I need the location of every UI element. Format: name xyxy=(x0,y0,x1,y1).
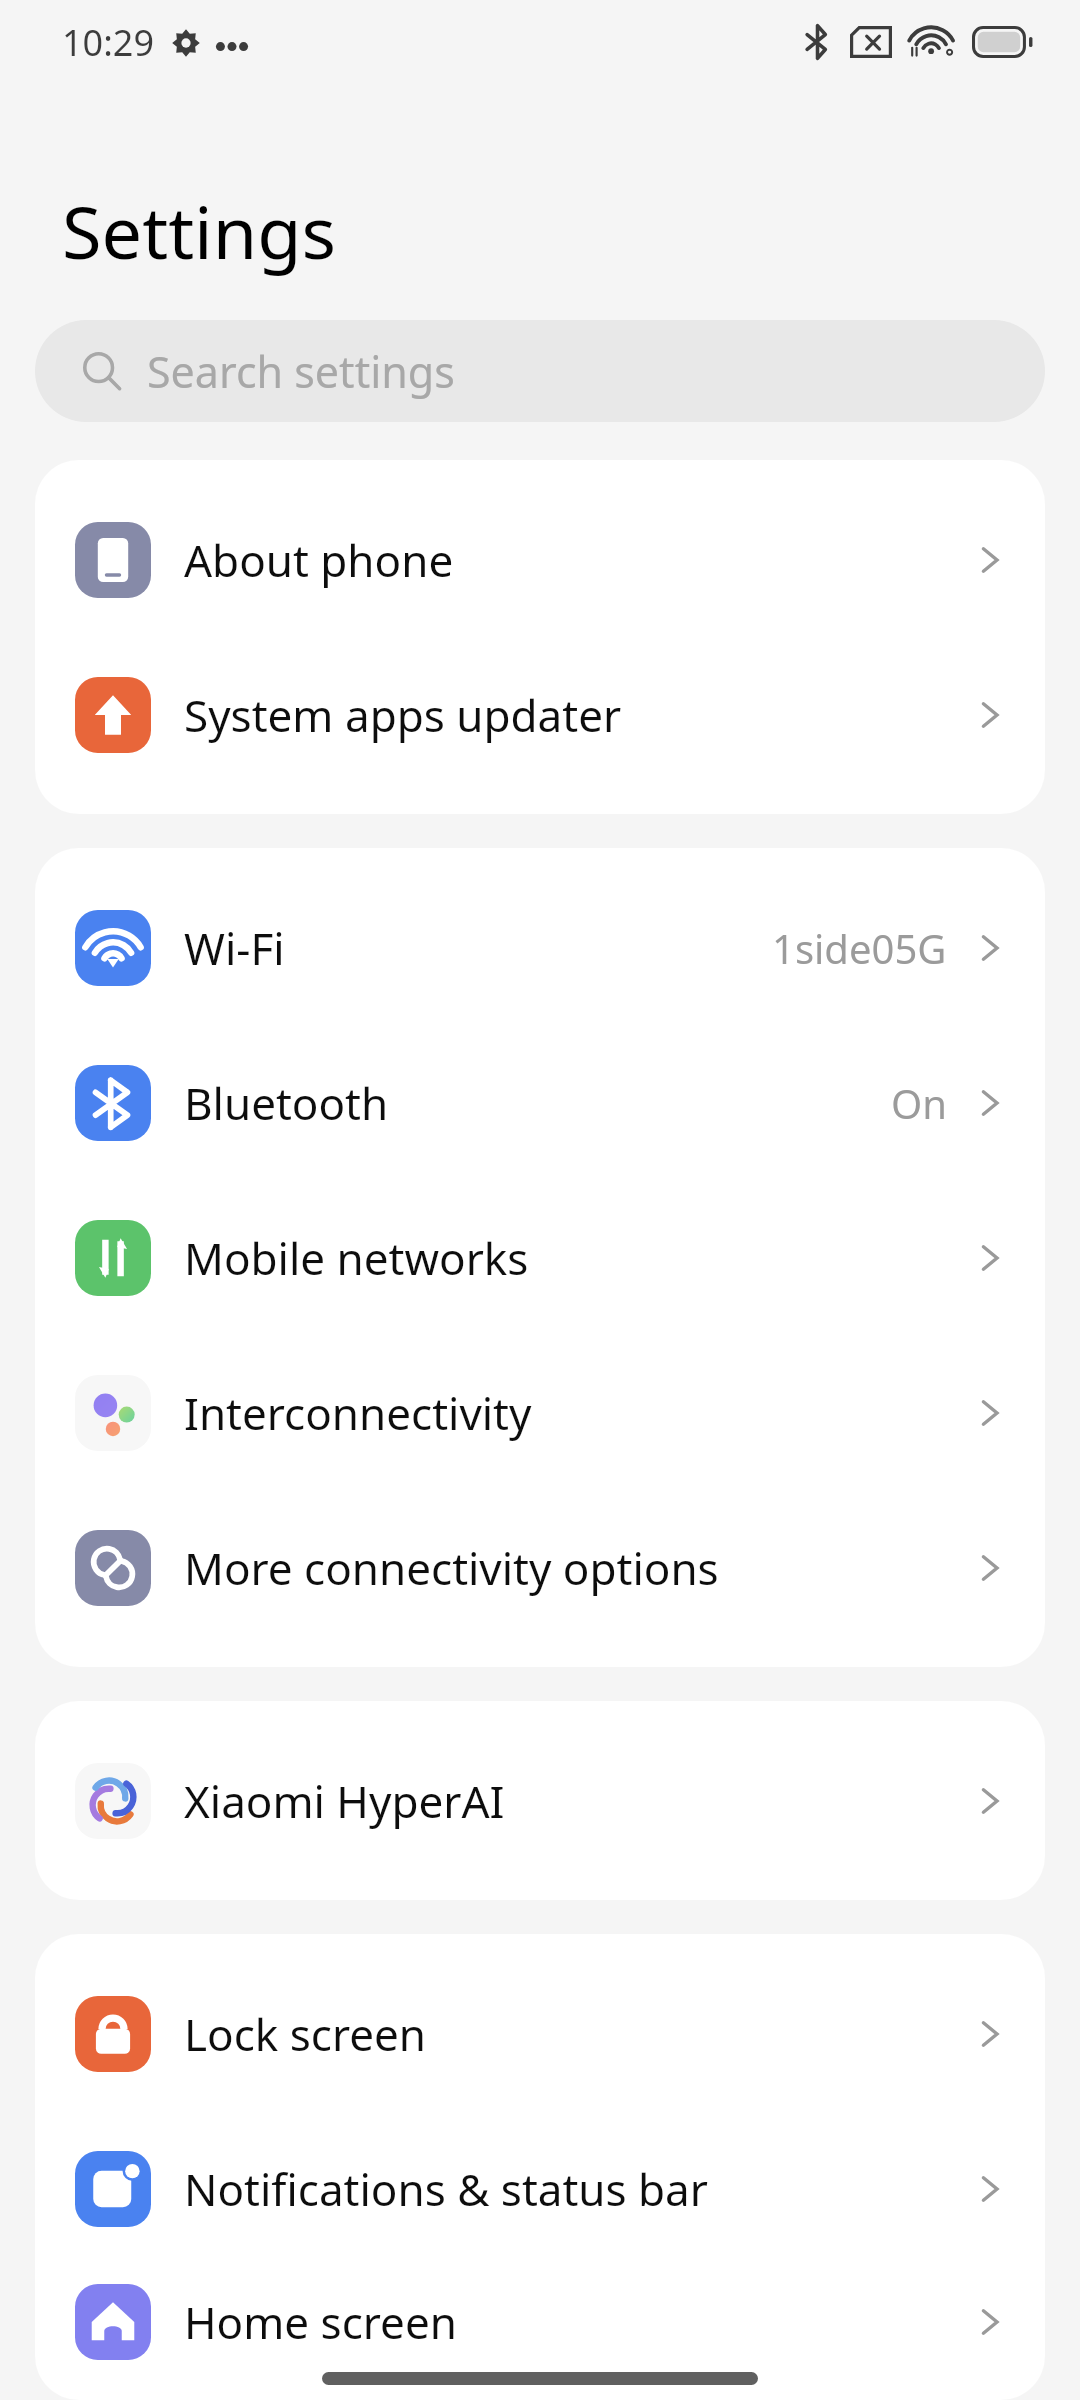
button[interactable]: Notifications & status bar xyxy=(35,2111,1045,2266)
staticText: Bluetooth xyxy=(184,1073,891,1133)
staticText: Xiaomi HyperAI xyxy=(184,1771,969,1831)
staticText: Interconnectivity xyxy=(184,1383,969,1443)
button[interactable]: Bluetooth xyxy=(35,1025,1045,1180)
button[interactable]: Search settings xyxy=(35,320,1045,422)
staticText: 10:29 xyxy=(62,18,155,67)
staticText: About phone xyxy=(184,530,969,590)
button[interactable]: Lock screen xyxy=(35,1956,1045,2111)
staticText: Mobile networks xyxy=(184,1228,969,1288)
staticText: Wi-Fi xyxy=(184,918,772,978)
button[interactable]: Home screen xyxy=(35,2266,1045,2378)
button[interactable]: About phone xyxy=(35,482,1045,637)
staticText: More connectivity options xyxy=(184,1538,969,1598)
button[interactable]: More connectivity options xyxy=(35,1490,1045,1645)
staticText: 1side05G xyxy=(772,921,947,975)
button[interactable]: Mobile networks xyxy=(35,1180,1045,1335)
staticText: Notifications & status bar xyxy=(184,2159,969,2219)
staticText: Search settings xyxy=(147,342,455,401)
staticText: System apps updater xyxy=(184,685,969,745)
button[interactable]: System apps updater xyxy=(35,637,1045,792)
staticText: Lock screen xyxy=(184,2004,969,2064)
staticText: Home screen xyxy=(184,2292,969,2352)
staticText: Settings xyxy=(62,182,336,280)
button[interactable]: Xiaomi HyperAI xyxy=(35,1723,1045,1878)
staticText: On xyxy=(891,1076,947,1130)
button[interactable]: Wi-Fi xyxy=(35,870,1045,1025)
button[interactable]: Interconnectivity xyxy=(35,1335,1045,1490)
